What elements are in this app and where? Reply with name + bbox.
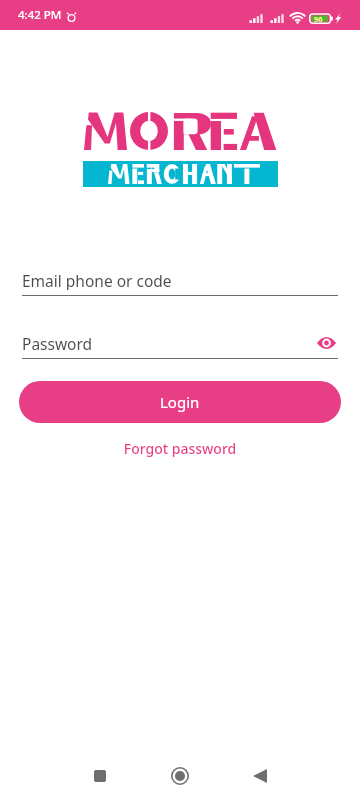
button[interactable]: Recents <box>60 752 140 800</box>
button[interactable]: Back <box>220 752 300 800</box>
button[interactable]: Forgot password <box>0 439 360 458</box>
staticText: Password <box>22 333 314 353</box>
button[interactable]: Login <box>19 381 341 423</box>
staticText: Login <box>160 392 200 412</box>
staticText: 96 <box>314 14 323 24</box>
button[interactable]: Home <box>140 752 220 800</box>
button[interactable]: Show password <box>314 333 338 353</box>
staticText: Email phone or code <box>22 270 338 290</box>
staticText: 4:42 PM <box>18 7 62 23</box>
